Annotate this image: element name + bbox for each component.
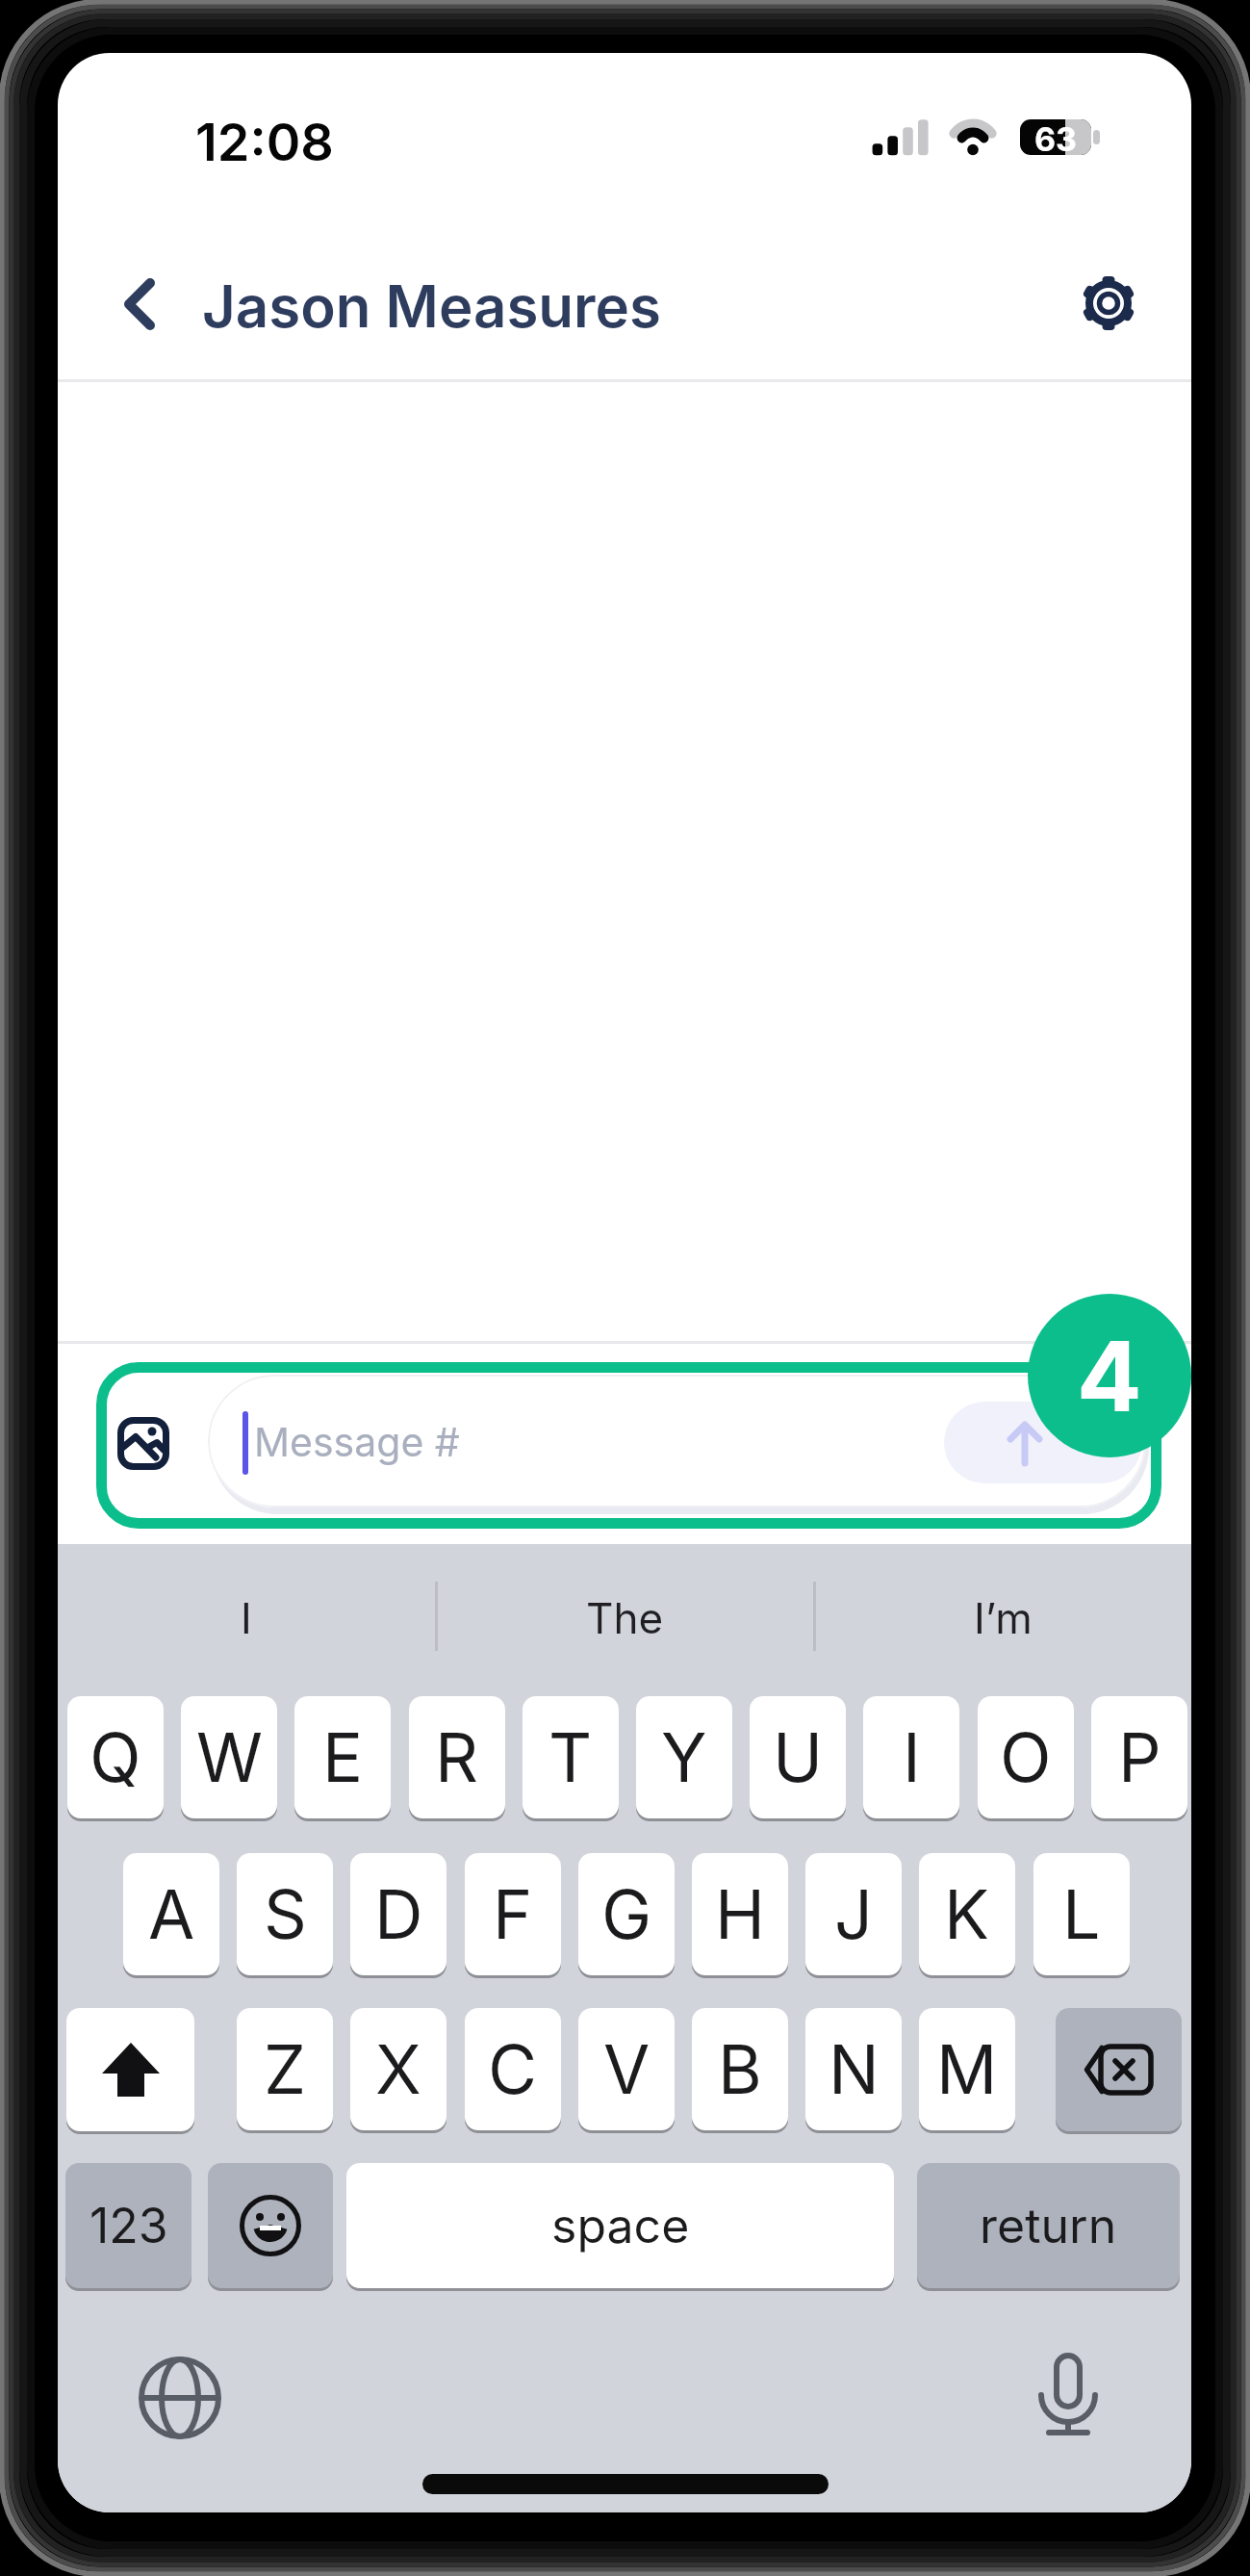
- staticText: A: [148, 1873, 195, 1955]
- button[interactable]: [1037, 2349, 1101, 2440]
- staticText: Y: [661, 1716, 707, 1798]
- button[interactable]: C: [465, 2008, 561, 2130]
- button[interactable]: W: [181, 1696, 277, 1818]
- button[interactable]: J: [805, 1853, 902, 1975]
- staticText: C: [488, 2028, 538, 2110]
- staticText: R: [435, 1716, 479, 1798]
- button[interactable]: L: [1033, 1853, 1130, 1975]
- staticText: X: [375, 2028, 421, 2110]
- button[interactable]: B: [692, 2008, 788, 2130]
- button[interactable]: [112, 1410, 175, 1476]
- staticText: space: [551, 2197, 690, 2254]
- button[interactable]: Z: [237, 2008, 333, 2130]
- staticText: T: [548, 1716, 593, 1798]
- button[interactable]: T: [523, 1696, 619, 1818]
- button[interactable]: X: [350, 2008, 446, 2130]
- button[interactable]: space: [346, 2163, 894, 2288]
- staticText: M: [936, 2028, 998, 2110]
- button[interactable]: H: [692, 1853, 788, 1975]
- staticText: V: [603, 2028, 651, 2110]
- button[interactable]: 123: [65, 2163, 191, 2288]
- staticText: 4: [1077, 1318, 1142, 1434]
- staticText: K: [944, 1873, 990, 1955]
- staticText: J: [834, 1873, 873, 1955]
- staticText: Jason Measures: [202, 271, 662, 339]
- button[interactable]: return: [917, 2163, 1180, 2288]
- button[interactable]: M: [919, 2008, 1015, 2130]
- button[interactable]: A: [123, 1853, 219, 1975]
- button[interactable]: P: [1091, 1696, 1187, 1818]
- staticText: I: [903, 1716, 921, 1798]
- button[interactable]: [1080, 274, 1137, 332]
- button[interactable]: R: [409, 1696, 505, 1818]
- button[interactable]: I: [863, 1696, 959, 1818]
- staticText: The: [586, 1592, 664, 1643]
- staticText: D: [374, 1873, 423, 1955]
- staticText: P: [1118, 1716, 1161, 1798]
- button[interactable]: [1056, 2008, 1182, 2131]
- staticText: F: [493, 1873, 533, 1955]
- button[interactable]: U: [750, 1696, 846, 1818]
- staticText: E: [322, 1716, 364, 1798]
- staticText: L: [1062, 1873, 1101, 1955]
- button[interactable]: [944, 1402, 1142, 1483]
- button[interactable]: [114, 274, 167, 334]
- staticText: 12:08: [195, 111, 334, 165]
- staticText: Z: [264, 2028, 307, 2110]
- staticText: I: [241, 1592, 252, 1643]
- staticText: O: [1000, 1716, 1052, 1798]
- staticText: I’m: [974, 1592, 1033, 1643]
- button[interactable]: S: [237, 1853, 333, 1975]
- staticText: B: [718, 2028, 762, 2110]
- button[interactable]: [66, 2008, 194, 2131]
- staticText: 123: [89, 2197, 168, 2254]
- staticText: return: [980, 2197, 1117, 2254]
- button[interactable]: Q: [67, 1696, 164, 1818]
- button[interactable]: D: [350, 1853, 446, 1975]
- button[interactable]: O: [978, 1696, 1074, 1818]
- button[interactable]: [208, 1375, 1146, 1507]
- button[interactable]: [208, 2163, 333, 2288]
- button[interactable]: Y: [636, 1696, 732, 1818]
- staticText: N: [829, 2028, 880, 2110]
- button[interactable]: [137, 2355, 223, 2441]
- button[interactable]: E: [294, 1696, 391, 1818]
- button[interactable]: N: [805, 2008, 902, 2130]
- button[interactable]: K: [919, 1853, 1015, 1975]
- staticText: Q: [89, 1716, 141, 1798]
- button[interactable]: G: [578, 1853, 675, 1975]
- button[interactable]: V: [578, 2008, 675, 2130]
- staticText: S: [264, 1873, 307, 1955]
- button[interactable]: F: [465, 1853, 561, 1975]
- staticText: U: [773, 1716, 824, 1798]
- staticText: Message #: [254, 1418, 460, 1466]
- staticText: H: [715, 1873, 766, 1955]
- staticText: G: [601, 1873, 652, 1955]
- staticText: 63: [1034, 119, 1078, 155]
- staticText: W: [196, 1716, 263, 1798]
